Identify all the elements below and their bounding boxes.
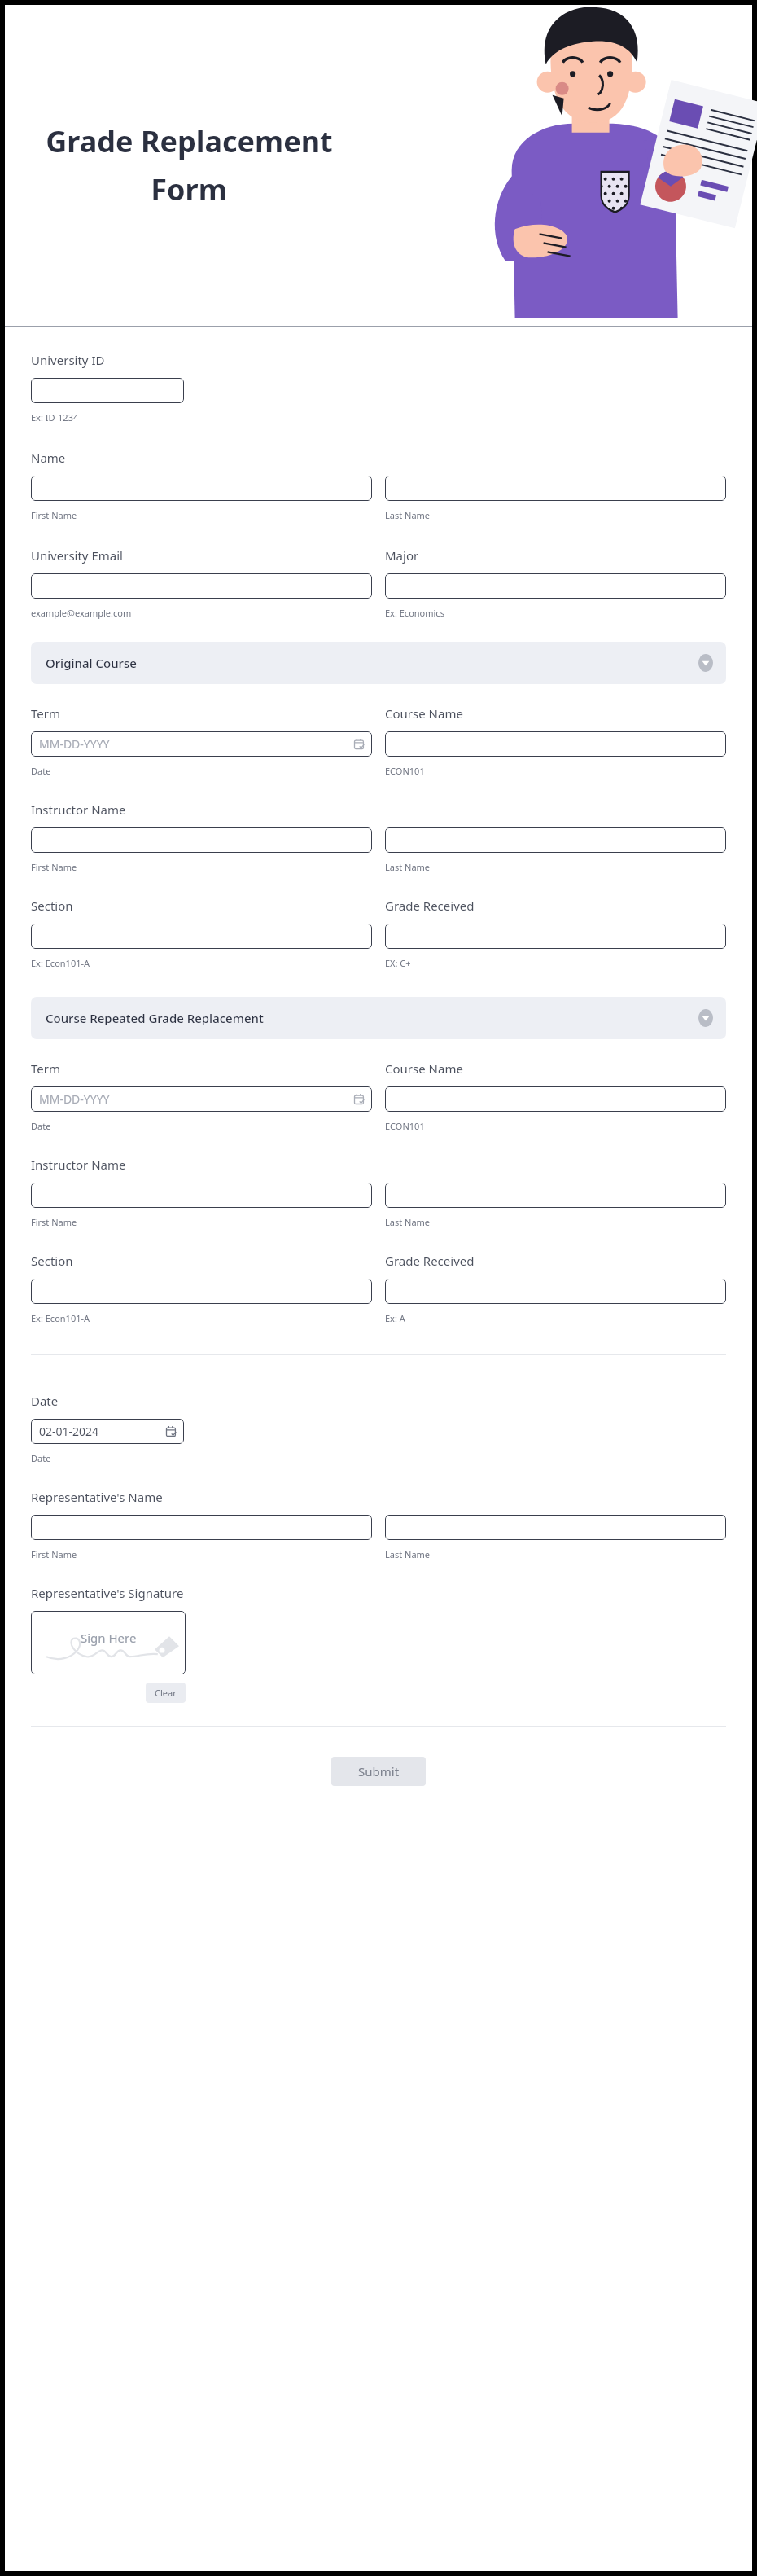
button[interactable]: MM-DD-YYYY <box>31 1086 372 1112</box>
staticText: Course Name <box>385 1060 463 1077</box>
staticText: Section <box>31 897 73 914</box>
button[interactable] <box>31 573 372 599</box>
staticText: Course Repeated Grade Replacement <box>46 1010 264 1026</box>
button[interactable]: Original Course <box>31 642 726 684</box>
button[interactable] <box>385 1515 726 1540</box>
staticText: Ex: Economics <box>385 607 444 619</box>
button[interactable] <box>31 1183 372 1208</box>
staticText: Form <box>151 169 227 209</box>
staticText: First Name <box>31 509 77 521</box>
staticText: Sign Here <box>81 1630 137 1646</box>
button[interactable]: Course Repeated Grade Replacement <box>31 997 726 1039</box>
staticText: Grade Received <box>385 1253 475 1269</box>
staticText: Original Course <box>46 655 137 671</box>
staticText: Last Name <box>385 1548 431 1560</box>
staticText: Name <box>31 450 66 466</box>
staticText: Last Name <box>385 861 431 873</box>
staticText: Clear <box>155 1687 177 1699</box>
staticText: Ex: Econ101-A <box>31 957 90 969</box>
staticText: MM-DD-YYYY <box>39 1091 110 1107</box>
staticText: First Name <box>31 1548 77 1560</box>
staticText: Course Name <box>385 705 463 722</box>
staticText: Date <box>31 1452 51 1464</box>
staticText: Last Name <box>385 509 431 521</box>
button[interactable] <box>385 1086 726 1112</box>
button[interactable] <box>31 1279 372 1304</box>
staticText: First Name <box>31 861 77 873</box>
staticText: Grade Replacement <box>46 121 333 161</box>
staticText: 02-01-2024 <box>39 1424 99 1439</box>
button[interactable] <box>385 476 726 501</box>
staticText: Representative's Name <box>31 1489 163 1505</box>
button[interactable] <box>385 731 726 757</box>
other: Pick date <box>354 1094 365 1104</box>
staticText: Date <box>31 765 51 777</box>
staticText: Major <box>385 547 419 564</box>
staticText: EX: C+ <box>385 957 411 969</box>
button[interactable]: MM-DD-YYYY <box>31 731 372 757</box>
staticText: Date <box>31 1393 59 1409</box>
button[interactable]: Clear <box>146 1683 186 1703</box>
staticText: Ex: Econ101-A <box>31 1312 90 1324</box>
staticText: University ID <box>31 352 105 368</box>
button[interactable] <box>31 924 372 949</box>
button[interactable]: Sign here <box>31 1611 186 1674</box>
staticText: ECON101 <box>385 765 425 777</box>
button[interactable] <box>385 827 726 853</box>
button[interactable] <box>31 1515 372 1540</box>
staticText: Representative's Signature <box>31 1585 184 1601</box>
button[interactable] <box>31 476 372 501</box>
staticText: Submit <box>358 1763 400 1780</box>
button[interactable] <box>31 827 372 853</box>
other: Collapse section <box>697 1009 715 1027</box>
button[interactable] <box>385 1279 726 1304</box>
other: Collapse section <box>697 654 715 672</box>
button[interactable] <box>31 378 184 403</box>
staticText: Date <box>31 1120 51 1132</box>
staticText: Instructor Name <box>31 1156 126 1173</box>
staticText: MM-DD-YYYY <box>39 736 110 752</box>
staticText: Term <box>31 1060 60 1077</box>
other: Pick date <box>354 739 365 749</box>
other: Pick date <box>166 1426 177 1437</box>
button[interactable]: 02-01-2024 <box>31 1419 184 1444</box>
button[interactable] <box>385 924 726 949</box>
staticText: Instructor Name <box>31 801 126 818</box>
staticText: Ex: ID-1234 <box>31 411 79 423</box>
button[interactable] <box>385 1183 726 1208</box>
staticText: Section <box>31 1253 73 1269</box>
staticText: Term <box>31 705 60 722</box>
staticText: First Name <box>31 1216 77 1228</box>
button[interactable] <box>385 573 726 599</box>
staticText: example@example.com <box>31 607 132 619</box>
staticText: Ex: A <box>385 1312 405 1324</box>
staticText: ECON101 <box>385 1120 425 1132</box>
staticText: Grade Received <box>385 897 475 914</box>
staticText: Last Name <box>385 1216 431 1228</box>
staticText: University Email <box>31 547 123 564</box>
button[interactable]: Submit <box>331 1757 426 1786</box>
